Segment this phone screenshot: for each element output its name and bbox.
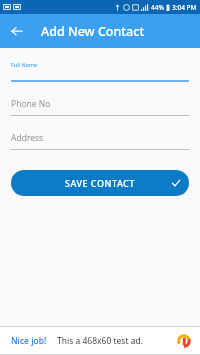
staticText: Add New Contact — [41, 23, 145, 40]
button[interactable]: Full Name — [0, 61, 200, 82]
button[interactable]: Address — [0, 132, 200, 150]
button[interactable]: Back — [7, 21, 27, 41]
staticText: Nice job! — [11, 335, 47, 347]
staticText: SAVE CONTACT — [65, 177, 135, 189]
button[interactable]: Phone No — [0, 98, 200, 116]
button[interactable]: Nice job! — [0, 327, 200, 354]
other: AdMob — [177, 334, 191, 348]
staticText: 3:04 PM — [172, 3, 197, 12]
button[interactable]: SAVE CONTACT — [11, 170, 189, 196]
staticText: Phone No — [11, 98, 51, 110]
staticText: 44% — [151, 3, 164, 12]
staticText: Address — [11, 132, 44, 144]
staticText: Full Name — [11, 61, 38, 68]
staticText: This a 468x60 test ad. — [57, 335, 143, 347]
